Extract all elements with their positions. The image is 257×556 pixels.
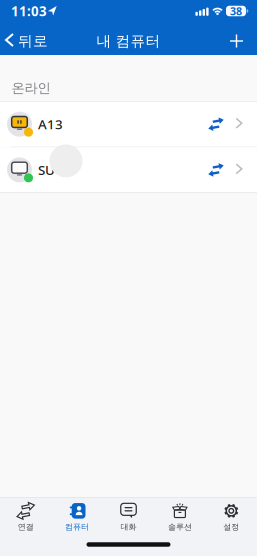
button[interactable]: A13 xyxy=(0,102,257,147)
staticText: 뒤로 xyxy=(18,32,48,50)
staticText: 대화 xyxy=(120,522,136,532)
button[interactable]: 설정 xyxy=(206,500,257,534)
staticText: A13 xyxy=(38,115,63,133)
button[interactable]: 뒤로 xyxy=(4,29,50,53)
button[interactable]: 연결 xyxy=(0,500,51,534)
staticText: 내 컴퓨터 xyxy=(96,32,160,50)
staticText: 온라인 xyxy=(11,80,50,96)
button[interactable]: SU xyxy=(0,147,257,192)
staticText: 연결 xyxy=(18,522,34,532)
staticText: 컴퓨터 xyxy=(65,522,89,532)
staticText: 설정 xyxy=(223,522,239,532)
staticText: SU xyxy=(38,161,55,179)
staticText: 38 xyxy=(230,4,242,18)
button[interactable]: 컴퓨터 xyxy=(51,500,103,534)
button[interactable]: 추가 xyxy=(229,34,243,48)
button[interactable]: 대화 xyxy=(103,500,154,534)
button[interactable]: 솔루션 xyxy=(154,500,206,534)
staticText: 솔루션 xyxy=(168,522,192,532)
staticText: 11:03 xyxy=(11,2,47,20)
